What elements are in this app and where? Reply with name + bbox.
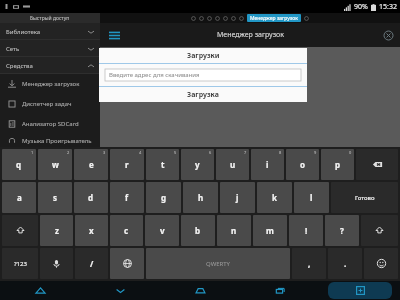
staticText: Анализатор SDCard [22,120,79,128]
button[interactable]: Tab 7 [239,16,244,21]
staticText: e [89,159,94,170]
button[interactable]: Voice input [40,248,73,279]
staticText: , [308,258,311,269]
button[interactable]: i [251,149,284,180]
staticText: Менеджер загрузок [22,80,80,88]
button[interactable]: h [183,182,218,213]
button[interactable]: ?123 [2,248,38,279]
staticText: x [89,225,94,236]
button[interactable]: Анализатор SDCard [0,114,100,134]
button[interactable]: u [216,149,249,180]
button[interactable]: o [286,149,319,180]
button[interactable]: Введите адрес для скачивания [105,69,301,81]
button[interactable]: Hide keyboard [0,281,80,300]
button[interactable]: Tab 5 [223,16,228,21]
button[interactable]: Emoji [364,248,398,279]
button[interactable]: . [328,248,362,279]
button[interactable]: Загрузка [99,87,307,102]
staticText: 2 [67,150,70,155]
button[interactable]: Home [160,281,240,300]
button[interactable]: y [181,149,214,180]
button[interactable]: Close tab [304,16,309,21]
staticText: i [266,159,269,170]
button[interactable]: Screenshot [320,281,400,300]
button[interactable]: Close [382,29,394,41]
staticText: 0 [349,150,352,155]
button[interactable]: Shift [2,215,38,246]
button[interactable]: x [75,215,108,246]
button[interactable]: l [294,182,329,213]
staticText: 15:32 [379,2,397,12]
button[interactable]: s [38,182,72,213]
button[interactable]: Средства [0,57,100,74]
staticText: 4 [139,150,142,155]
button[interactable]: Tab 6 [231,16,236,21]
button[interactable]: g [146,182,181,213]
button[interactable]: ! [289,215,323,246]
button[interactable]: t [146,149,179,180]
button[interactable]: Tab 4 [215,16,220,21]
button[interactable]: / [75,248,108,279]
button[interactable]: f [110,182,144,213]
button[interactable]: j [220,182,255,213]
button[interactable]: m [253,215,287,246]
button[interactable]: Быстрый доступ [0,13,100,23]
button[interactable]: , [292,248,326,279]
staticText: Быстрый доступ [30,15,70,22]
button[interactable]: a [2,182,36,213]
button[interactable]: Диспетчер задач [0,94,100,114]
staticText: g [161,192,167,203]
staticText: j [236,192,239,203]
staticText: 5 [174,150,177,155]
staticText: v [160,225,165,236]
button[interactable]: Менеджер загрузок [0,74,100,94]
button[interactable]: Tab 1 [191,16,196,21]
staticText: c [124,225,129,236]
staticText: 1 [31,150,34,155]
staticText: 9 [314,150,317,155]
button[interactable]: k [257,182,292,213]
button[interactable]: Готово [331,182,398,213]
staticText: ! [305,225,308,236]
button[interactable]: b [181,215,215,246]
button[interactable]: d [74,182,108,213]
button[interactable]: Collapse [80,281,160,300]
staticText: p [335,159,341,170]
staticText: f [125,192,129,203]
button[interactable]: Tab 2 [199,16,204,21]
staticText: Менеджер загрузок [217,30,284,40]
button[interactable]: Музыка Проигрыватель [0,134,100,147]
staticText: 90% [354,2,368,12]
button[interactable]: r [110,149,144,180]
staticText: d [88,192,94,203]
button[interactable]: Change language [110,248,144,279]
staticText: Введите адрес для скачивания [109,71,200,79]
button[interactable]: Backspace [356,149,398,180]
staticText: l [310,192,313,203]
staticText: z [55,225,59,236]
staticText: Готово [355,194,375,202]
button[interactable]: Open navigation menu [108,29,120,41]
staticText: u [230,159,236,170]
button[interactable]: e [74,149,108,180]
staticText: n [231,225,237,236]
button[interactable]: Tab 3 [207,16,212,21]
button[interactable]: v [145,215,179,246]
button[interactable]: n [217,215,251,246]
staticText: ?123 [14,260,27,268]
staticText: / [90,258,94,269]
button[interactable]: c [110,215,143,246]
staticText: Сеть [6,45,20,53]
button[interactable]: ? [325,215,359,246]
button[interactable]: w [38,149,72,180]
button[interactable]: Recent apps [240,281,320,300]
button[interactable]: Сеть [0,40,100,57]
button[interactable]: Менеджер загрузок [250,14,298,22]
button[interactable]: Библиотека [0,23,100,40]
staticText: m [266,225,274,236]
button[interactable]: p [321,149,354,180]
button[interactable]: q [2,149,36,180]
button[interactable]: z [40,215,73,246]
button[interactable]: QWERTY [146,248,290,279]
button[interactable]: Shift [361,215,398,246]
